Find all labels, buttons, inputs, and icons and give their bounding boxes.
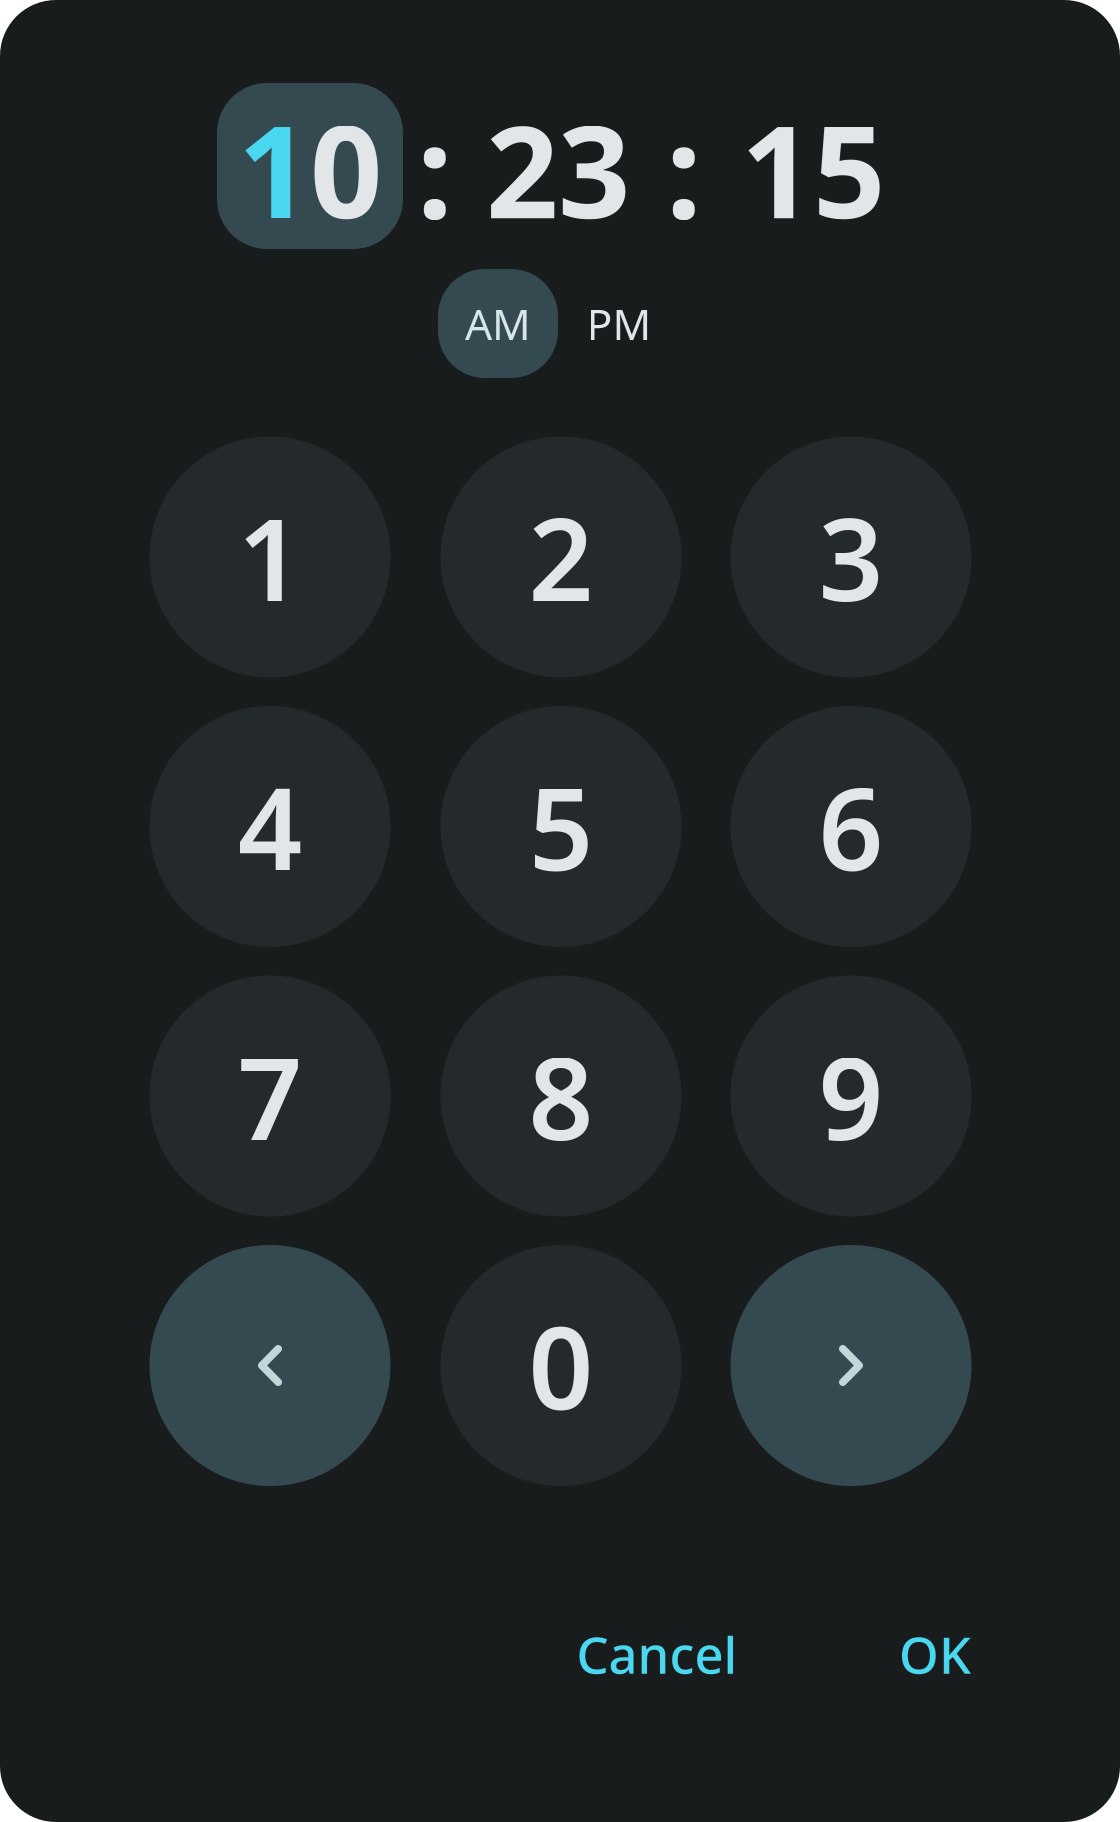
button[interactable]: 2 (440, 436, 681, 677)
staticText: 6 (818, 751, 883, 902)
button[interactable]: 4 (149, 706, 390, 947)
button[interactable]: Next field (730, 1245, 971, 1486)
button[interactable]: 15 (721, 86, 905, 252)
staticText: : (417, 85, 453, 253)
button[interactable]: 3 (730, 436, 971, 677)
staticText: PM (586, 295, 651, 352)
button[interactable]: 5 (440, 706, 681, 947)
button[interactable]: 1 (149, 436, 390, 677)
staticText: 23 (486, 85, 630, 253)
button[interactable]: 6 (730, 706, 971, 947)
staticText: 1 (237, 482, 302, 632)
staticText: 3 (818, 482, 883, 632)
staticText: 4 (237, 751, 302, 902)
staticText: : (666, 85, 702, 253)
staticText: 0 (310, 85, 382, 253)
button[interactable]: 23 (466, 86, 650, 252)
button[interactable]: 9 (730, 975, 971, 1216)
button[interactable]: Cancel (567, 1614, 747, 1694)
staticText: 1 (238, 85, 310, 253)
staticText: Cancel (576, 1620, 737, 1688)
staticText: 8 (528, 1021, 593, 1171)
button[interactable]: Previous field (149, 1245, 390, 1486)
button[interactable]: AM (438, 269, 558, 378)
staticText: 15 (741, 85, 885, 253)
staticText: AM (465, 295, 531, 352)
button[interactable]: 8 (440, 975, 681, 1216)
button[interactable]: 0 (440, 1245, 681, 1486)
staticText: 0 (528, 1290, 593, 1441)
button[interactable]: 7 (149, 975, 390, 1216)
button[interactable]: OK (875, 1614, 995, 1694)
staticText: 9 (818, 1021, 883, 1171)
staticText: 2 (528, 482, 593, 632)
button[interactable]: PM (560, 269, 678, 378)
staticText: 5 (528, 751, 593, 902)
staticText: OK (899, 1620, 971, 1688)
staticText: 7 (237, 1021, 302, 1171)
button[interactable]: 1 (217, 83, 403, 249)
